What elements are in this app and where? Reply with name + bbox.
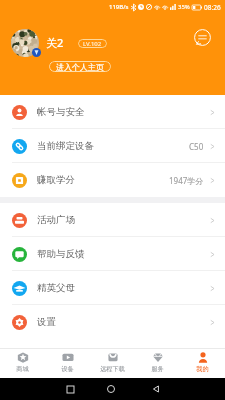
button[interactable]: 活动广场 bbox=[0, 203, 225, 237]
button[interactable]: 进入个人主页 bbox=[49, 61, 111, 72]
staticText: 08:26 bbox=[204, 3, 221, 12]
staticText: 远程下载 bbox=[100, 365, 125, 373]
button[interactable]: 设备 bbox=[45, 348, 90, 378]
staticText: 活动广场 bbox=[37, 214, 75, 226]
button[interactable]: 当前绑定设备 bbox=[0, 129, 225, 163]
staticText: C50 bbox=[189, 141, 204, 152]
button[interactable]: Back bbox=[145, 378, 167, 400]
button[interactable]: Recents bbox=[59, 378, 81, 400]
staticText: 帐号与安全 bbox=[37, 106, 85, 118]
button[interactable]: 帮助与反馈 bbox=[0, 237, 225, 271]
button[interactable]: 我的 bbox=[180, 348, 225, 378]
staticText: 关2 bbox=[46, 35, 64, 50]
staticText: 我的 bbox=[196, 365, 209, 373]
staticText: 设置 bbox=[37, 316, 56, 328]
staticText: 35% bbox=[178, 3, 190, 11]
staticText: 帮助与反馈 bbox=[37, 248, 85, 260]
staticText: 精英父母 bbox=[37, 282, 75, 294]
button[interactable]: 商城 bbox=[0, 348, 45, 378]
button[interactable]: 远程下载 bbox=[90, 348, 135, 378]
button[interactable]: 赚取学分 bbox=[0, 163, 225, 197]
button[interactable]: Messages bbox=[193, 28, 212, 47]
staticText: 设备 bbox=[61, 365, 74, 373]
button[interactable]: 帐号与安全 bbox=[0, 95, 225, 129]
button[interactable]: 服务 bbox=[135, 348, 180, 378]
button[interactable]: 设置 bbox=[0, 305, 225, 339]
staticText: 商城 bbox=[16, 365, 29, 373]
staticText: 赚取学分 bbox=[37, 174, 75, 186]
staticText: 119B/s bbox=[109, 3, 129, 11]
button[interactable]: Home bbox=[100, 378, 122, 400]
staticText: 服务 bbox=[151, 365, 164, 373]
staticText: 进入个人主页 bbox=[56, 62, 104, 72]
button[interactable]: 精英父母 bbox=[0, 271, 225, 305]
staticText: 1947学分 bbox=[169, 175, 204, 186]
staticText: 当前绑定设备 bbox=[37, 140, 94, 152]
staticText: LV.102 bbox=[83, 40, 102, 48]
